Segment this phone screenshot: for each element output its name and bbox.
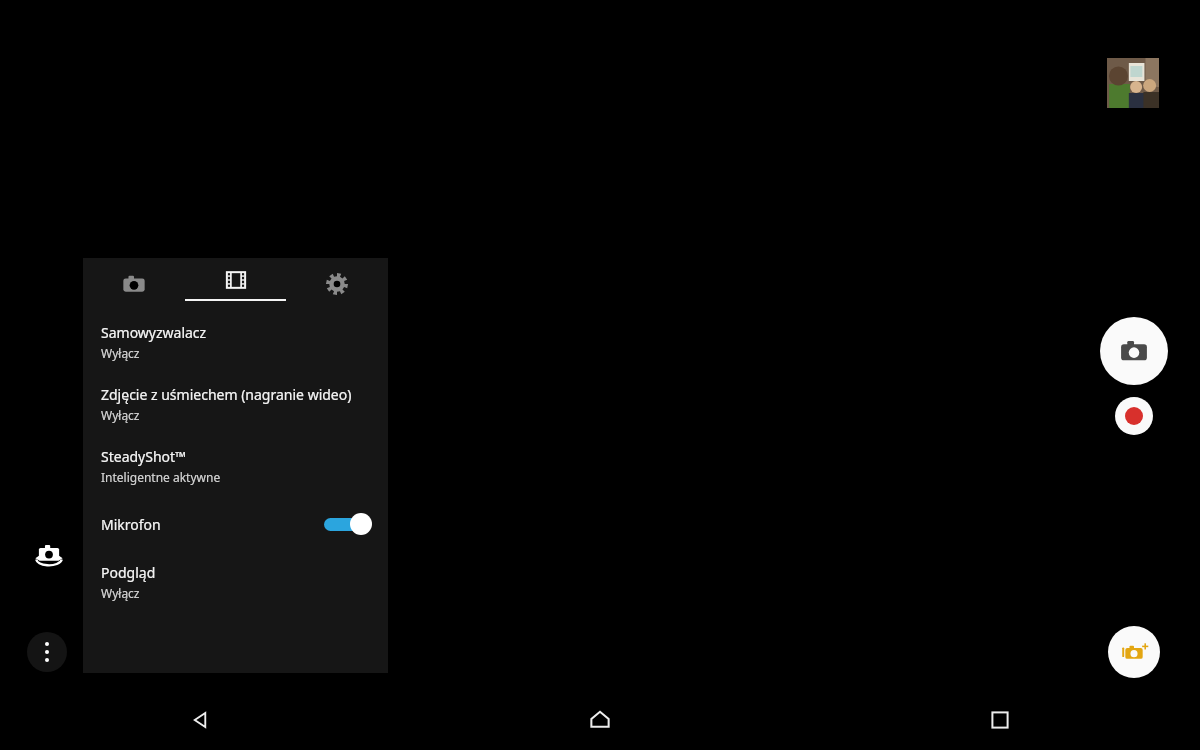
button[interactable]: Settings: [286, 258, 388, 310]
button[interactable]: Mikrofon: [83, 502, 388, 546]
button[interactable]: Take photo: [1100, 317, 1168, 385]
button[interactable]: Back: [0, 690, 400, 750]
staticText: Samowyzwalacz: [101, 323, 207, 342]
button[interactable]: Podgląd: [83, 554, 388, 610]
button[interactable]: Home: [400, 690, 800, 750]
staticText: Wyłącz: [101, 585, 140, 601]
staticText: Wyłącz: [101, 407, 140, 423]
button[interactable]: Zdjęcie z uśmiechem (nagranie wideo): [83, 376, 388, 432]
button[interactable]: Video mode, selected: [184, 258, 286, 310]
button[interactable]: Capture photo while recording: [1108, 626, 1160, 678]
button[interactable]: Switch camera: [26, 535, 72, 581]
staticText: Zdjęcie z uśmiechem (nagranie wideo): [101, 385, 352, 404]
staticText: Podgląd: [101, 563, 156, 582]
button[interactable]: Recent apps: [800, 690, 1200, 750]
button[interactable]: SteadyShot™: [83, 438, 388, 494]
staticText: SteadyShot™: [101, 447, 186, 466]
staticText: Mikrofon: [101, 515, 324, 534]
staticText: Wyłącz: [101, 345, 140, 361]
button[interactable]: Start recording: [1115, 397, 1153, 435]
button[interactable]: Photo mode: [83, 258, 184, 310]
button[interactable]: Samowyzwalacz: [83, 314, 388, 370]
button[interactable]: More options: [27, 632, 67, 672]
button[interactable]: Last photo thumbnail: [1107, 58, 1159, 108]
staticText: Inteligentne aktywne: [101, 469, 221, 485]
